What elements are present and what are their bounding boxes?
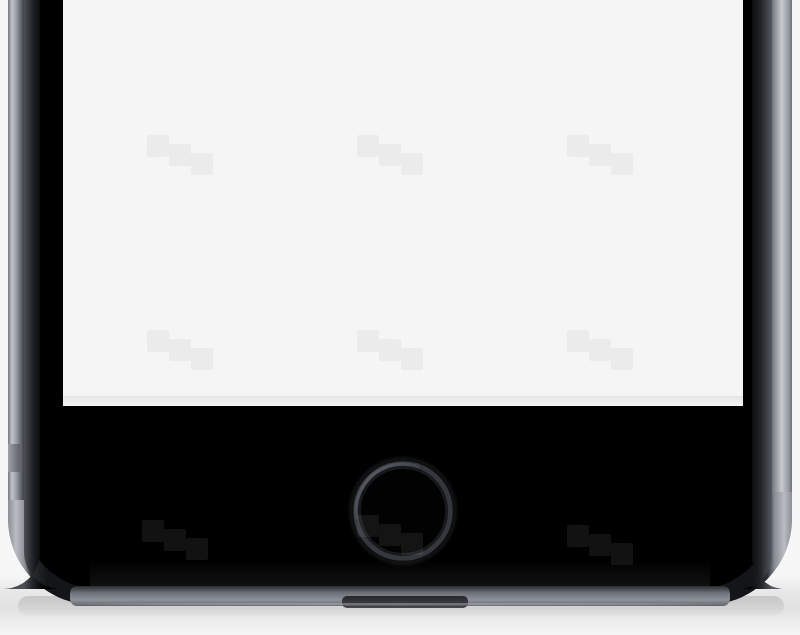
button[interactable]: iPhone product photo [0, 0, 800, 635]
